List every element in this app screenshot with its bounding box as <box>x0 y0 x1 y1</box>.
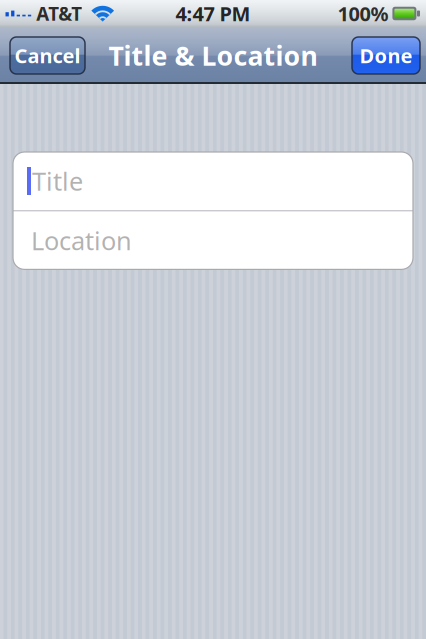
staticText: 4:47 PM <box>175 0 250 27</box>
button[interactable]: Location <box>13 211 413 269</box>
staticText: Done <box>359 42 412 69</box>
staticText: 100% <box>337 0 388 27</box>
button[interactable]: Done <box>352 37 420 74</box>
button[interactable]: Cancel <box>10 37 85 74</box>
staticText: Title <box>32 164 83 198</box>
staticText: Title & Location <box>108 38 317 73</box>
staticText: Location <box>31 224 132 257</box>
button[interactable]: Title <box>13 152 413 210</box>
staticText: AT&T <box>36 1 82 26</box>
staticText: Cancel <box>14 42 80 69</box>
